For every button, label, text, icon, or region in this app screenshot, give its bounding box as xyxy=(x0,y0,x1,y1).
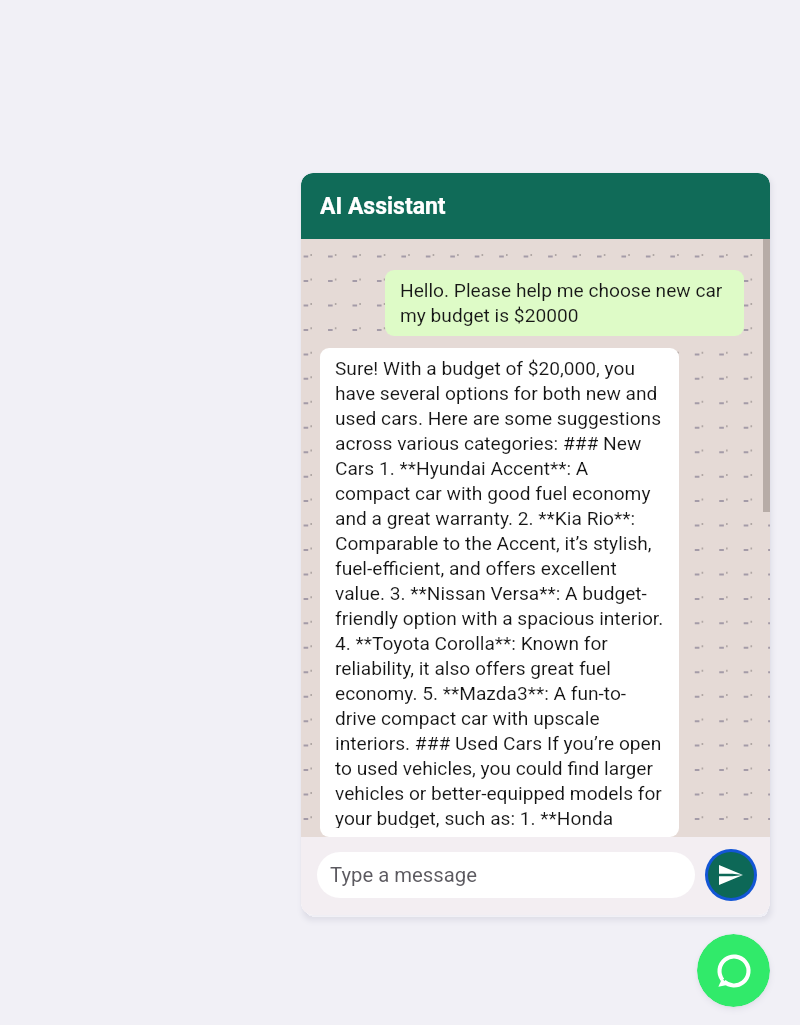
staticText: AI Assistant xyxy=(320,193,446,220)
staticText: Hello. Please help me choose new car my … xyxy=(400,279,729,327)
button[interactable]: AI Assistant xyxy=(301,173,770,239)
button[interactable]: Sure! With a budget of $20,000, you have… xyxy=(320,348,679,837)
staticText: Type a message xyxy=(330,863,477,887)
button[interactable]: Hello. Please help me choose new car my … xyxy=(385,270,744,336)
button[interactable]: Type a message xyxy=(317,852,695,898)
button[interactable]: Send xyxy=(708,852,754,898)
button[interactable]: Open chat xyxy=(697,934,770,1007)
staticText: Sure! With a budget of $20,000, you have… xyxy=(335,357,664,828)
